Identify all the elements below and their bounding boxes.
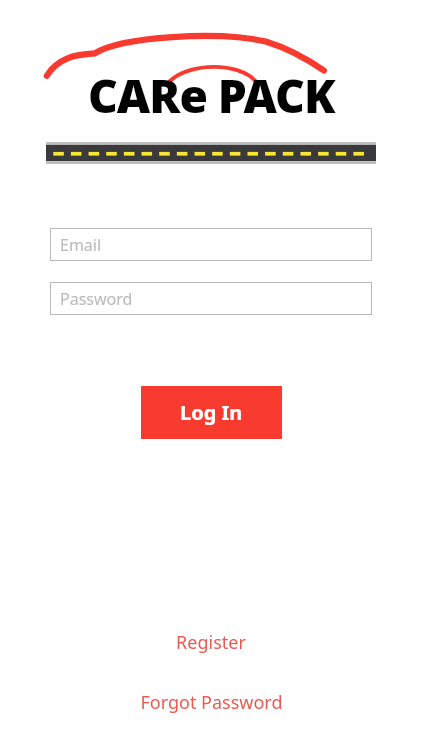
button[interactable]: Forgot Password [0, 681, 422, 724]
button[interactable]: Password [50, 282, 372, 315]
staticText: Email [60, 234, 102, 256]
staticText: Forgot Password [140, 690, 283, 715]
button[interactable]: Log In [141, 386, 282, 439]
staticText: Register [176, 630, 246, 655]
staticText: CARe PACK [88, 64, 335, 127]
button[interactable]: Register [0, 621, 422, 664]
staticText: Log In [180, 399, 243, 426]
staticText: Password [60, 288, 133, 310]
button[interactable]: Email [50, 228, 372, 261]
